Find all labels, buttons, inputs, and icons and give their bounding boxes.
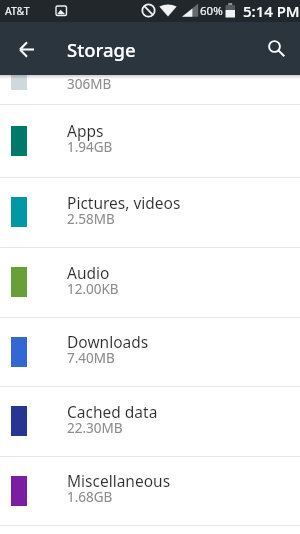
- button[interactable]: Audio: [0, 247, 300, 317]
- button[interactable]: Miscellaneous: [0, 456, 300, 525]
- staticText: 306MB: [67, 75, 112, 93]
- button[interactable]: [257, 36, 293, 72]
- staticText: 7.40MB: [67, 349, 115, 367]
- staticText: Miscellaneous: [67, 470, 171, 491]
- staticText: Audio: [67, 262, 110, 283]
- button[interactable]: Pictures, videos: [0, 177, 300, 247]
- staticText: 1.94GB: [67, 138, 113, 156]
- button[interactable]: [8, 36, 44, 72]
- button[interactable]: Downloads: [0, 317, 300, 386]
- button[interactable]: Apps: [0, 104, 300, 177]
- staticText: 12.00KB: [67, 280, 119, 298]
- staticText: 2.58MB: [67, 210, 115, 228]
- staticText: AT&T: [5, 4, 30, 18]
- staticText: Pictures, videos: [67, 192, 181, 213]
- staticText: Downloads: [67, 331, 149, 352]
- staticText: Storage: [67, 37, 136, 62]
- staticText: 22.30MB: [67, 419, 123, 437]
- staticText: Cached data: [67, 401, 158, 422]
- staticText: Apps: [67, 120, 104, 141]
- staticText: 5:14 PM: [243, 1, 300, 21]
- button[interactable]: [0, 75, 300, 104]
- button[interactable]: Cached data: [0, 386, 300, 456]
- staticText: 1.68GB: [67, 488, 113, 506]
- staticText: 60%: [200, 3, 223, 19]
